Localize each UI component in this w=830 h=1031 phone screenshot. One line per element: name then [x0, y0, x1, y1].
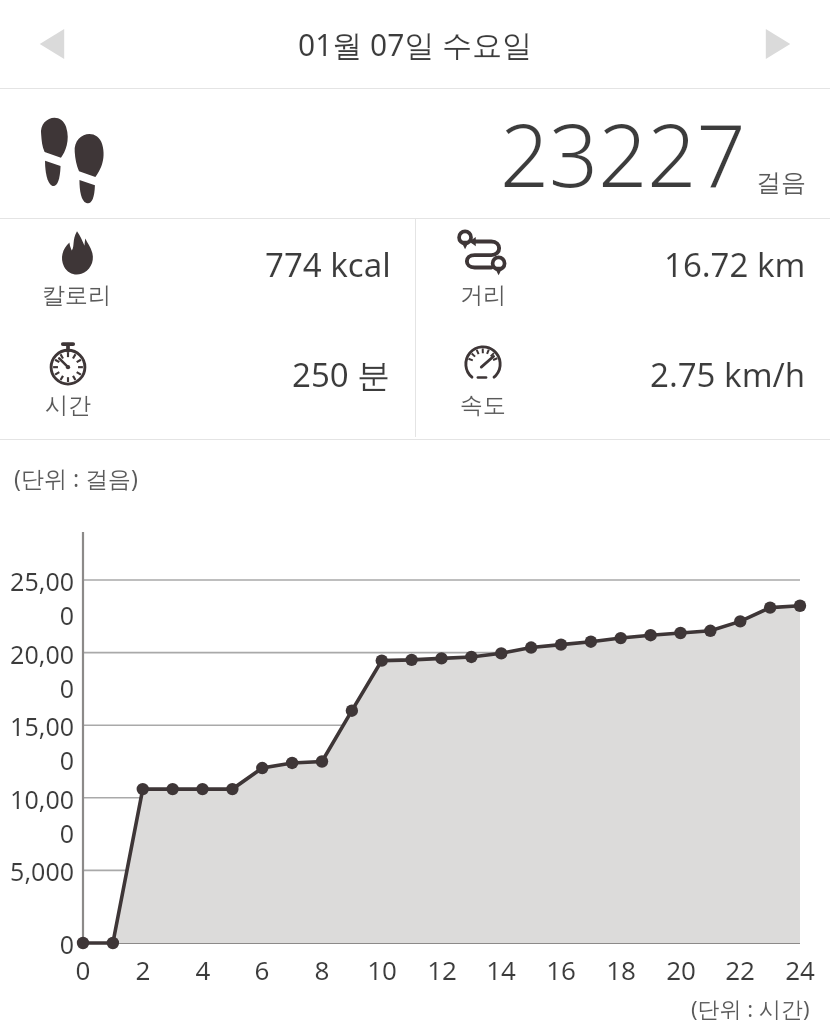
staticText: 8 — [297, 952, 347, 987]
staticText: 속도 — [460, 391, 506, 420]
other: Speed — [457, 337, 509, 389]
staticText: 20,000 — [4, 637, 74, 705]
staticText: 18 — [596, 952, 646, 987]
other: Distance — [457, 227, 509, 279]
staticText: 10,000 — [4, 782, 74, 850]
staticText: 10 — [357, 952, 407, 987]
staticText: 4 — [178, 952, 228, 987]
staticText: 16 — [536, 952, 586, 987]
staticText: 16.72 km — [664, 242, 806, 287]
button[interactable]: Time — [0, 329, 415, 420]
staticText: 0 — [58, 952, 108, 987]
staticText: 23227 — [500, 95, 746, 212]
staticText: 걸음 — [756, 167, 806, 198]
staticText: 20 — [656, 952, 706, 987]
other: Time — [42, 337, 94, 389]
staticText: 12 — [417, 952, 467, 987]
button[interactable]: 23227 — [0, 89, 830, 218]
staticText: (단위 : 시간) — [691, 993, 810, 1023]
staticText: 6 — [237, 952, 287, 987]
staticText: 24 — [775, 952, 825, 987]
staticText: (단위 : 걸음) — [14, 462, 138, 493]
button[interactable]: Calories — [0, 219, 415, 310]
other: Calories — [51, 227, 103, 279]
staticText: 5,000 — [4, 854, 74, 888]
button[interactable]: Speed — [415, 329, 830, 420]
staticText: 14 — [476, 952, 526, 987]
staticText: 거리 — [460, 281, 506, 310]
staticText: 15,000 — [4, 709, 74, 777]
staticText: 2.75 km/h — [650, 352, 806, 397]
staticText: 시간 — [45, 391, 91, 420]
staticText: 0 — [4, 927, 74, 961]
button[interactable]: Distance — [415, 219, 830, 310]
staticText: 25,000 — [4, 564, 74, 632]
button[interactable]: Previous day — [18, 8, 90, 80]
button[interactable]: Next day — [740, 8, 812, 80]
staticText: 2 — [118, 952, 168, 987]
staticText: 칼로리 — [42, 281, 111, 310]
staticText: 22 — [715, 952, 765, 987]
staticText: 774 kcal — [265, 242, 391, 287]
staticText: 250 분 — [292, 352, 391, 397]
staticText: 01월 07일 수요일 — [298, 24, 533, 65]
